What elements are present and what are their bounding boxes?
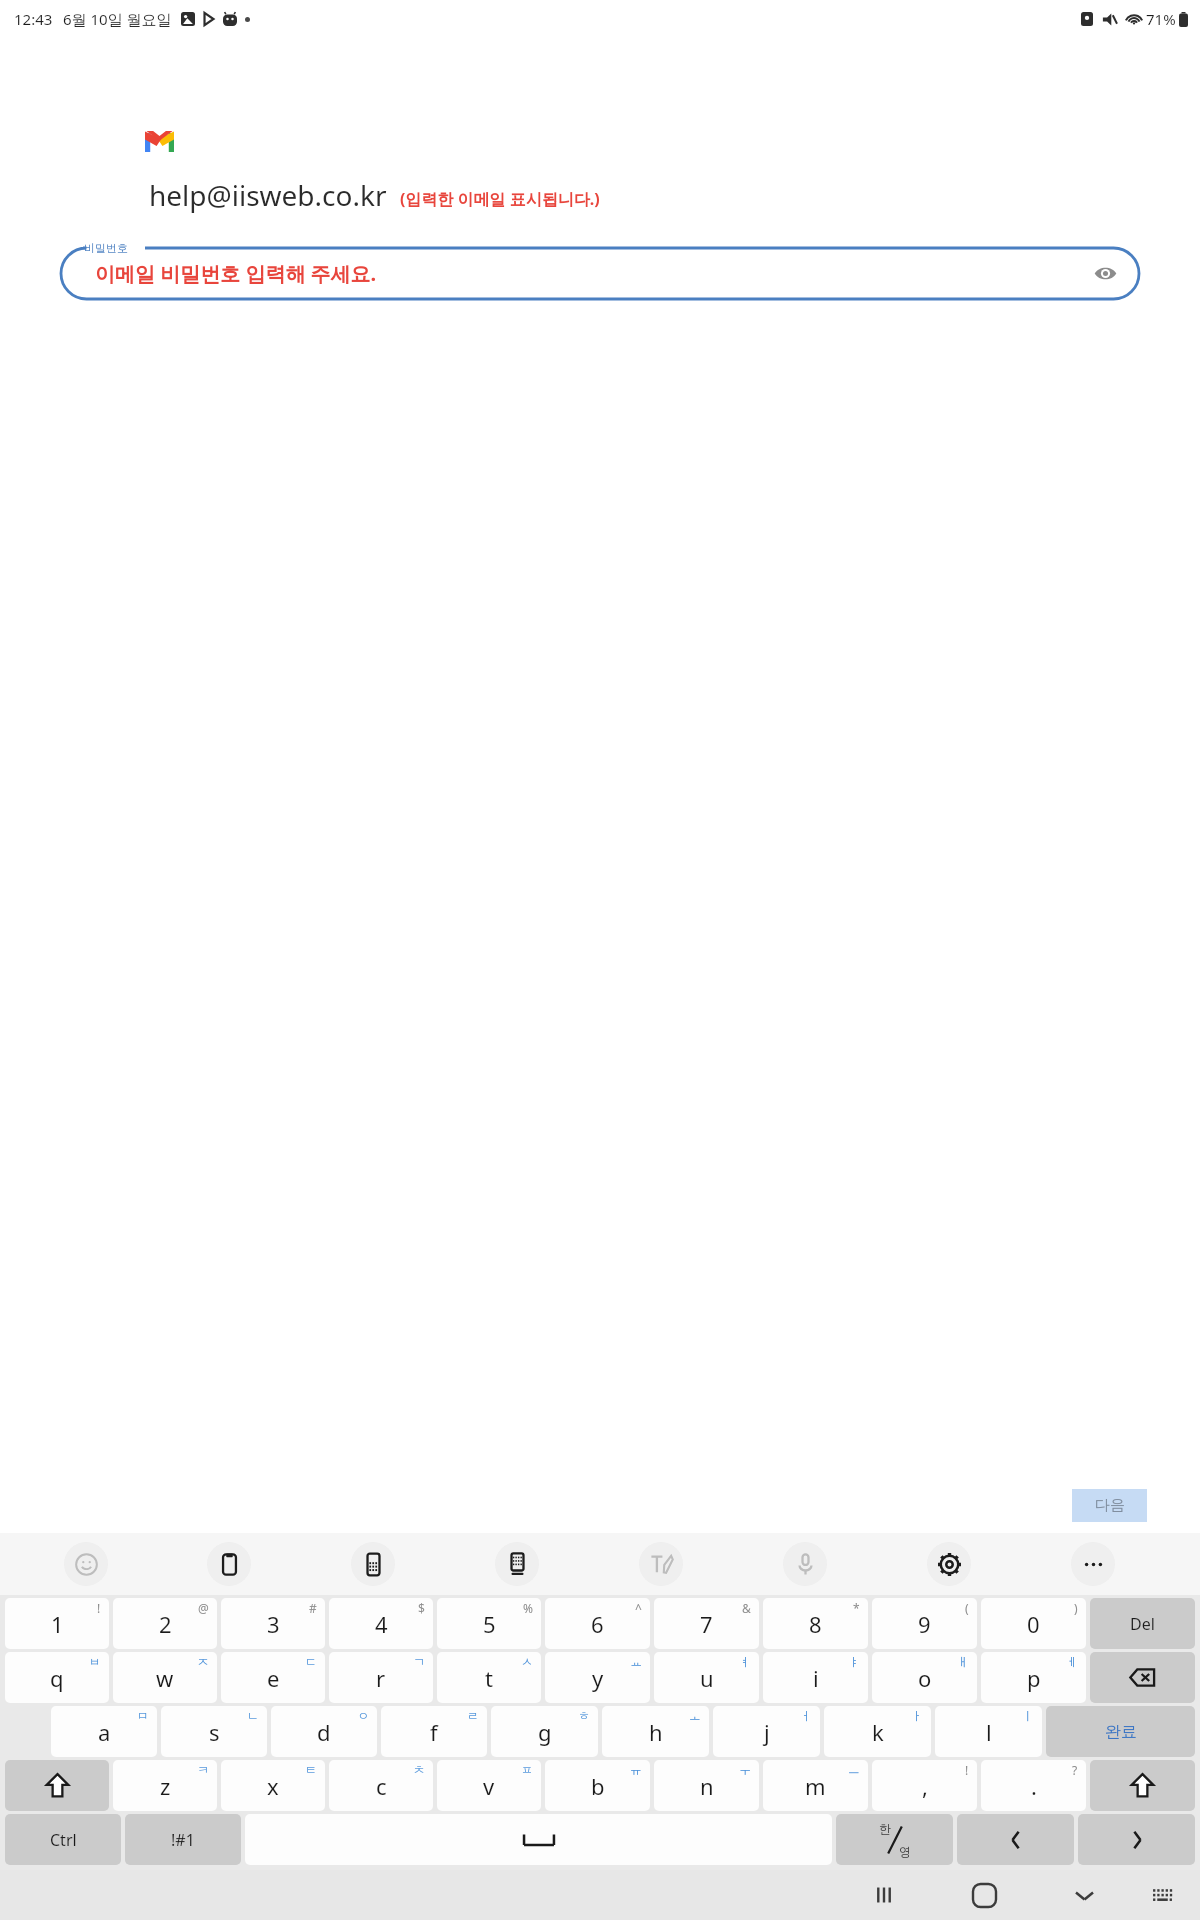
staticText: h xyxy=(649,1717,663,1747)
staticText: ㅎ xyxy=(578,1708,590,1723)
button[interactable]: u xyxy=(654,1652,759,1703)
button[interactable]: j xyxy=(713,1706,820,1757)
button[interactable]: 완료 xyxy=(1046,1706,1195,1757)
button[interactable]: o xyxy=(872,1652,977,1703)
button[interactable]: s xyxy=(161,1706,267,1757)
staticText: ㅋ xyxy=(197,1762,209,1777)
staticText: ㅜ xyxy=(739,1762,751,1777)
staticText: 0 xyxy=(1027,1609,1040,1639)
button[interactable]: x xyxy=(221,1760,325,1811)
button[interactable]: Del xyxy=(1090,1598,1195,1649)
button[interactable]: 8 xyxy=(763,1598,868,1649)
button[interactable]: b xyxy=(545,1760,650,1811)
button[interactable]: 9 xyxy=(872,1598,977,1649)
staticText: ㅈ xyxy=(197,1654,209,1669)
button[interactable]: a xyxy=(51,1706,157,1757)
staticText: 3 xyxy=(267,1609,280,1639)
staticText: ㄹ xyxy=(467,1708,479,1723)
button[interactable]: y xyxy=(545,1652,650,1703)
button[interactable]: , xyxy=(872,1760,977,1811)
button[interactable]: 한영 전환 xyxy=(836,1814,953,1865)
button[interactable]: c xyxy=(329,1760,433,1811)
staticText: ㅠ xyxy=(630,1762,642,1777)
button[interactable]: n xyxy=(654,1760,759,1811)
button[interactable]: 4 xyxy=(329,1598,433,1649)
staticText: ㅔ xyxy=(1066,1654,1078,1669)
button[interactable]: m xyxy=(763,1760,868,1811)
button[interactable]: 클립보드 xyxy=(207,1542,251,1586)
staticText: 한 xyxy=(879,1821,891,1836)
button[interactable]: 더보기 xyxy=(1071,1542,1115,1586)
staticText: & xyxy=(742,1600,751,1616)
button[interactable]: k xyxy=(824,1706,931,1757)
button[interactable]: t xyxy=(437,1652,541,1703)
button[interactable]: l xyxy=(935,1706,1042,1757)
button[interactable]: 시프트 xyxy=(5,1760,109,1811)
staticText: 영 xyxy=(899,1844,911,1859)
staticText: i xyxy=(813,1663,819,1693)
staticText: ㄷ xyxy=(305,1654,317,1669)
staticText: ㅡ xyxy=(848,1762,860,1777)
button[interactable]: 시프트 xyxy=(1090,1760,1195,1811)
staticText: e xyxy=(267,1663,280,1693)
staticText: ㅑ xyxy=(848,1654,860,1669)
button[interactable]: 3 xyxy=(221,1598,325,1649)
button[interactable]: !#1 xyxy=(125,1814,241,1865)
button[interactable]: e xyxy=(221,1652,325,1703)
button[interactable]: p xyxy=(981,1652,1086,1703)
button[interactable]: 설정 xyxy=(927,1542,971,1586)
button[interactable]: 이모티콘 xyxy=(64,1542,108,1586)
button[interactable]: 7 xyxy=(654,1598,759,1649)
staticText: Ctrl xyxy=(50,1829,77,1851)
button[interactable]: 스페이스 xyxy=(245,1814,832,1865)
button[interactable]: w xyxy=(113,1652,217,1703)
button[interactable]: 키보드 설정 xyxy=(495,1542,539,1586)
button[interactable]: 5 xyxy=(437,1598,541,1649)
staticText: p xyxy=(1027,1663,1041,1693)
staticText: ㅗ xyxy=(689,1708,701,1723)
button[interactable]: . xyxy=(981,1760,1086,1811)
button[interactable]: f xyxy=(381,1706,487,1757)
button[interactable]: v xyxy=(437,1760,541,1811)
button[interactable]: g xyxy=(491,1706,598,1757)
button[interactable]: 1 xyxy=(5,1598,109,1649)
staticText: 6 xyxy=(591,1609,604,1639)
staticText: 8 xyxy=(809,1609,822,1639)
staticText: x xyxy=(267,1771,279,1801)
staticText: t xyxy=(485,1663,493,1693)
button[interactable]: d xyxy=(271,1706,377,1757)
button[interactable]: h xyxy=(602,1706,709,1757)
button[interactable]: 2 xyxy=(113,1598,217,1649)
button[interactable]: 키패드 모드 xyxy=(351,1542,395,1586)
button[interactable]: 0 xyxy=(981,1598,1086,1649)
staticText: (입력한 이메일 표시됩니다.) xyxy=(400,188,600,210)
staticText: n xyxy=(700,1771,714,1801)
staticText: ㅣ xyxy=(1022,1708,1034,1723)
button[interactable]: 다음 xyxy=(1072,1489,1147,1522)
button[interactable]: 왼쪽 이동 xyxy=(957,1814,1074,1865)
button[interactable]: q xyxy=(5,1652,109,1703)
staticText: !#1 xyxy=(171,1829,195,1851)
staticText: ㅌ xyxy=(305,1762,317,1777)
button[interactable]: 키보드 전환 xyxy=(1138,1871,1186,1919)
button[interactable]: 6 xyxy=(545,1598,650,1649)
staticText: ㅇ xyxy=(357,1708,369,1723)
button[interactable]: 지우기 xyxy=(1090,1652,1195,1703)
button[interactable]: 키보드 숨기기 xyxy=(1054,1870,1114,1920)
button[interactable]: 비밀번호 표시 xyxy=(1088,256,1122,290)
button[interactable]: 필기 입력 xyxy=(639,1542,683,1586)
button[interactable]: 홈 xyxy=(954,1870,1014,1920)
button[interactable]: z xyxy=(113,1760,217,1811)
button[interactable]: i xyxy=(763,1652,868,1703)
staticText: * xyxy=(853,1600,860,1616)
button[interactable]: 최근 앱 xyxy=(854,1870,914,1920)
staticText: z xyxy=(160,1771,171,1801)
button[interactable]: 음성 입력 xyxy=(783,1542,827,1586)
staticText: ㅐ xyxy=(957,1654,969,1669)
button[interactable]: 비밀번호 xyxy=(61,241,1139,299)
staticText: ㅁ xyxy=(137,1708,149,1723)
button[interactable]: 오른쪽 이동 xyxy=(1078,1814,1195,1865)
button[interactable]: r xyxy=(329,1652,433,1703)
staticText: ? xyxy=(1072,1762,1078,1778)
button[interactable]: Ctrl xyxy=(5,1814,121,1865)
